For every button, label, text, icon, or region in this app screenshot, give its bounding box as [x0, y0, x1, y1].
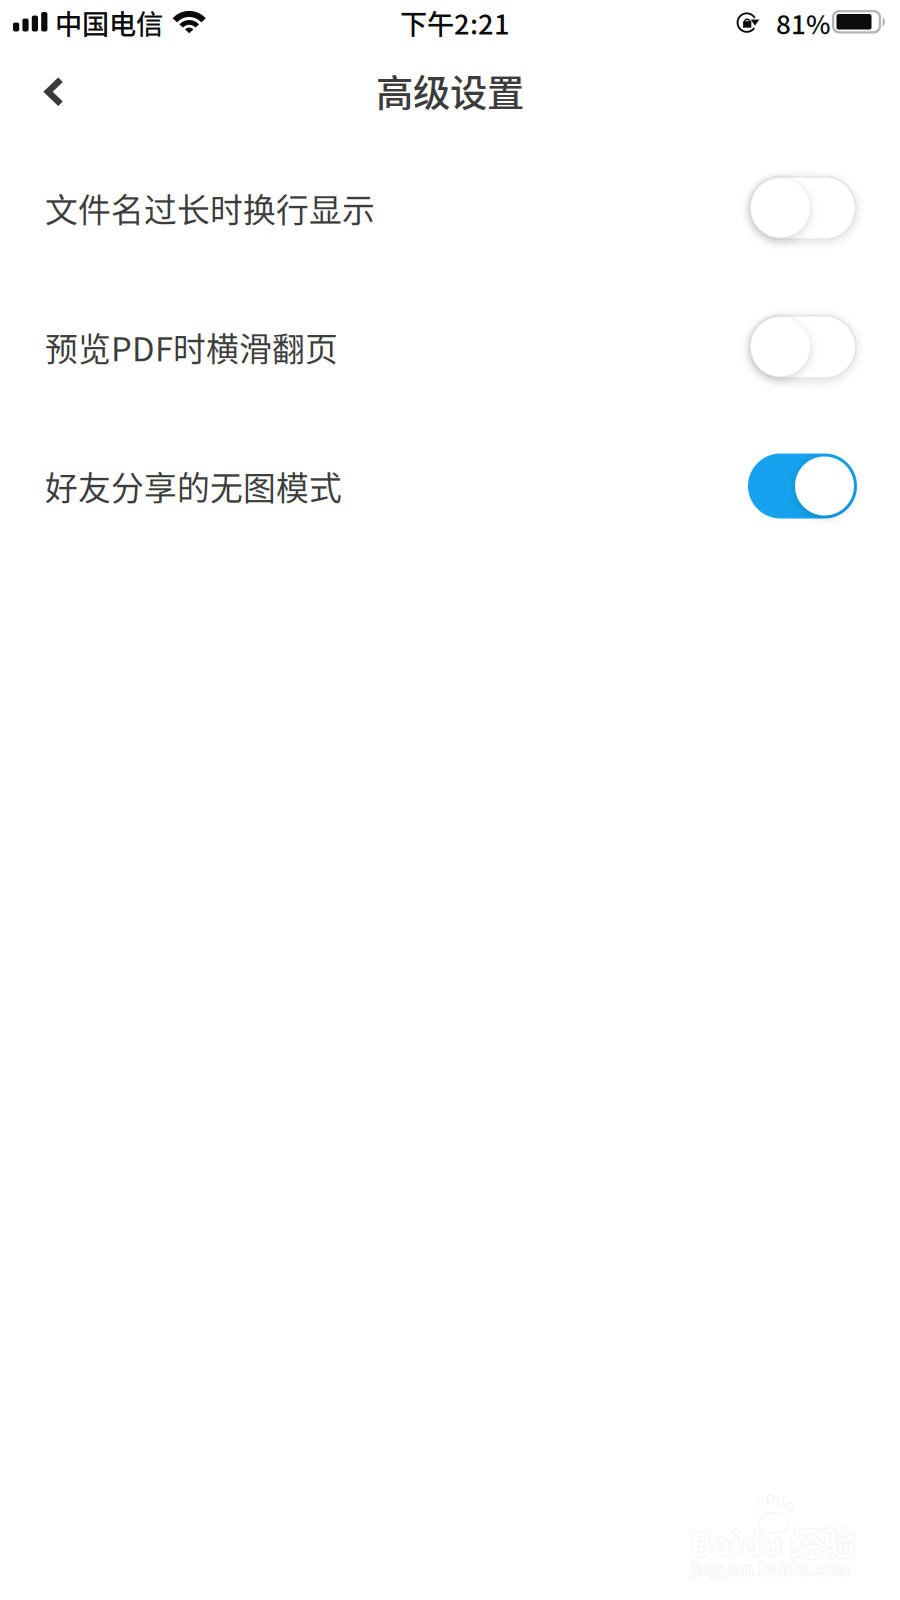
staticText: Baidu 经验: [690, 1519, 856, 1566]
button[interactable]: 返回: [4, 47, 104, 138]
button[interactable]: 好友分享的无图模式: [748, 453, 857, 518]
button[interactable]: 好友分享的无图模式: [0, 416, 900, 555]
staticText: 好友分享的无图模式: [45, 462, 342, 510]
staticText: jingyan.baidu.com: [690, 1555, 850, 1582]
button[interactable]: 预览PDF时横滑翻页: [0, 277, 900, 416]
staticText: Baidu 经验: [689, 1518, 855, 1565]
staticText: 中国电信: [55, 3, 163, 42]
staticText: 预览PDF时横滑翻页: [45, 323, 338, 371]
staticText: jingyan.baidu.com: [691, 1554, 851, 1581]
staticText: 81%: [776, 4, 831, 42]
staticText: jingyan.baidu.com: [690, 1554, 850, 1581]
staticText: 文件名过长时换行显示: [45, 184, 375, 232]
button[interactable]: 文件名过长时换行显示: [748, 175, 857, 240]
staticText: Baidu 经验: [691, 1518, 857, 1565]
staticText: Baidu 经验: [690, 1518, 856, 1565]
staticText: jingyan.baidu.com: [690, 1553, 850, 1580]
staticText: 下午2:21: [400, 3, 510, 42]
staticText: 高级设置: [376, 64, 524, 118]
button[interactable]: 文件名过长时换行显示: [0, 138, 900, 277]
staticText: Baidu 经验: [690, 1517, 856, 1564]
staticText: jingyan.baidu.com: [689, 1554, 849, 1581]
button[interactable]: 预览PDF时横滑翻页: [748, 314, 857, 379]
